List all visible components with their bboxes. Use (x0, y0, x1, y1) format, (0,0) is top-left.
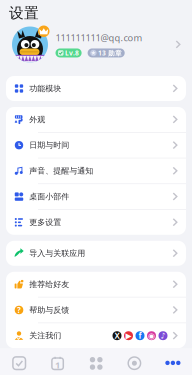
staticText: 功能模块 (29, 84, 61, 93)
button[interactable]: Tasks (0, 348, 38, 375)
staticText: 外观 (29, 115, 45, 124)
staticText: ♪ (160, 331, 165, 340)
button[interactable]: More (154, 348, 192, 375)
staticText: 导入与关联应用 (29, 248, 85, 258)
button[interactable]: 声音、提醒与通知 (6, 158, 186, 183)
button[interactable]: 111111111@qq.com (0, 22, 192, 67)
staticText: 设置 (9, 4, 39, 22)
staticText: 日期与时间 (29, 140, 69, 150)
staticText: Lv.8 (65, 48, 79, 57)
staticText: f (138, 330, 141, 341)
staticText: X (114, 330, 119, 341)
staticText: 1 (55, 359, 60, 371)
button[interactable]: 功能模块 (6, 76, 186, 101)
button[interactable]: 桌面小部件 (6, 184, 186, 209)
staticText: 关注我们 (29, 331, 61, 341)
button[interactable]: 导入与关联应用 (6, 241, 186, 266)
button[interactable]: 外观 (6, 107, 186, 132)
button[interactable]: Calendar (38, 348, 77, 375)
staticText: ? (17, 305, 21, 315)
button[interactable]: 推荐给好友 (6, 272, 186, 297)
staticText: 更多设置 (29, 217, 61, 227)
staticText: 声音、提醒与通知 (29, 166, 93, 176)
staticText: ◉ (148, 331, 155, 340)
button[interactable]: 关注我们 (6, 323, 186, 348)
staticText: 111111111@qq.com (55, 32, 142, 44)
button[interactable]: Modules (77, 348, 115, 375)
staticText: 帮助与反馈 (29, 305, 69, 315)
button[interactable]: Focus (115, 348, 154, 375)
staticText: ▶ (125, 331, 131, 340)
staticText: 推荐给好友 (29, 279, 69, 289)
staticText: 13 勋章 (98, 48, 122, 57)
staticText: 桌面小部件 (29, 192, 69, 201)
button[interactable]: 日期与时间 (6, 133, 186, 158)
button[interactable]: 更多设置 (6, 210, 186, 235)
button[interactable]: ? (6, 297, 186, 322)
